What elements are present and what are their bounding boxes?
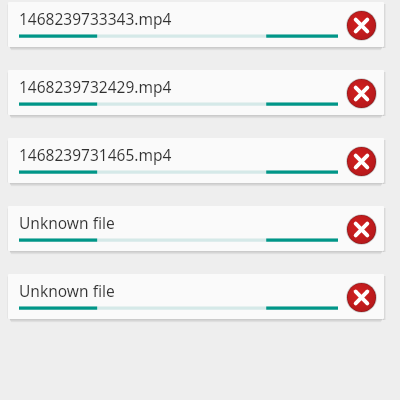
button[interactable]: 1468239732429.mp4 [8,70,384,115]
button[interactable]: Cancel download [345,145,377,177]
staticText: Unknown file [19,280,115,301]
staticText: Unknown file [19,212,115,233]
button[interactable]: Cancel download [345,9,377,41]
button[interactable]: Unknown file [8,274,384,319]
staticText: 1468239733343.mp4 [19,8,172,29]
button[interactable]: 1468239731465.mp4 [8,138,384,183]
button[interactable]: Unknown file [8,206,384,251]
staticText: 1468239731465.mp4 [19,144,172,165]
button[interactable]: Cancel download [345,77,377,109]
staticText: 1468239732429.mp4 [19,76,172,97]
button[interactable]: Cancel download [345,213,377,245]
button[interactable]: Cancel download [345,281,377,313]
button[interactable]: 1468239733343.mp4 [8,2,384,47]
